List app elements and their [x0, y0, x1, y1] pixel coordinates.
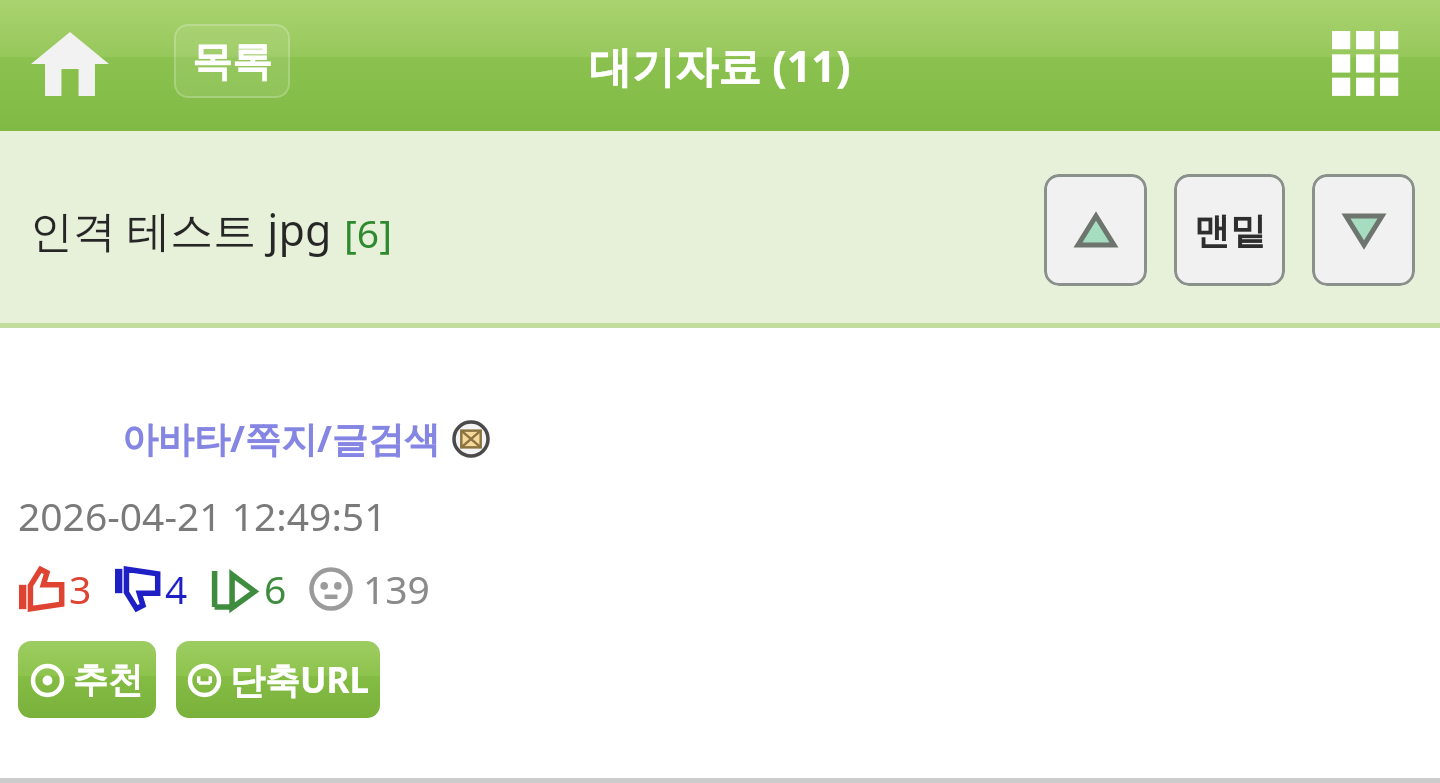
other: Dislikes: [114, 568, 160, 610]
button[interactable]: 단축URL: [176, 641, 380, 718]
staticText: 아바타/쪽지/글검색: [122, 414, 440, 463]
staticText: 대기자료 (11): [589, 36, 851, 95]
staticText: 맨밑: [1194, 208, 1266, 253]
button[interactable]: All menus: [1312, 14, 1424, 118]
other: Likes: [18, 568, 64, 610]
staticText: 6: [264, 562, 287, 615]
staticText: 3: [69, 562, 92, 615]
staticText: [6]: [344, 206, 392, 259]
staticText: 139: [363, 562, 430, 615]
staticText: 목록: [192, 36, 272, 86]
staticText: 4: [165, 562, 188, 615]
other: Views: [309, 567, 353, 611]
other: Replies: [210, 569, 256, 609]
button[interactable]: 맨밑: [1174, 174, 1285, 286]
button[interactable]: Scroll to bottom: [1312, 174, 1415, 286]
staticText: 2026-04-21 12:49:51: [18, 489, 387, 542]
button[interactable]: Home: [26, 20, 114, 108]
button[interactable]: 인격 테스트 jpg: [30, 200, 392, 259]
button[interactable]: Scroll to top: [1044, 174, 1147, 286]
button[interactable]: 목록: [174, 24, 290, 98]
button[interactable]: 아바타/쪽지/글검색: [122, 414, 490, 463]
staticText: 추천: [73, 658, 143, 702]
staticText: 단축URL: [230, 656, 369, 704]
button[interactable]: 추천: [18, 641, 156, 718]
staticText: 인격 테스트 jpg: [30, 200, 332, 259]
